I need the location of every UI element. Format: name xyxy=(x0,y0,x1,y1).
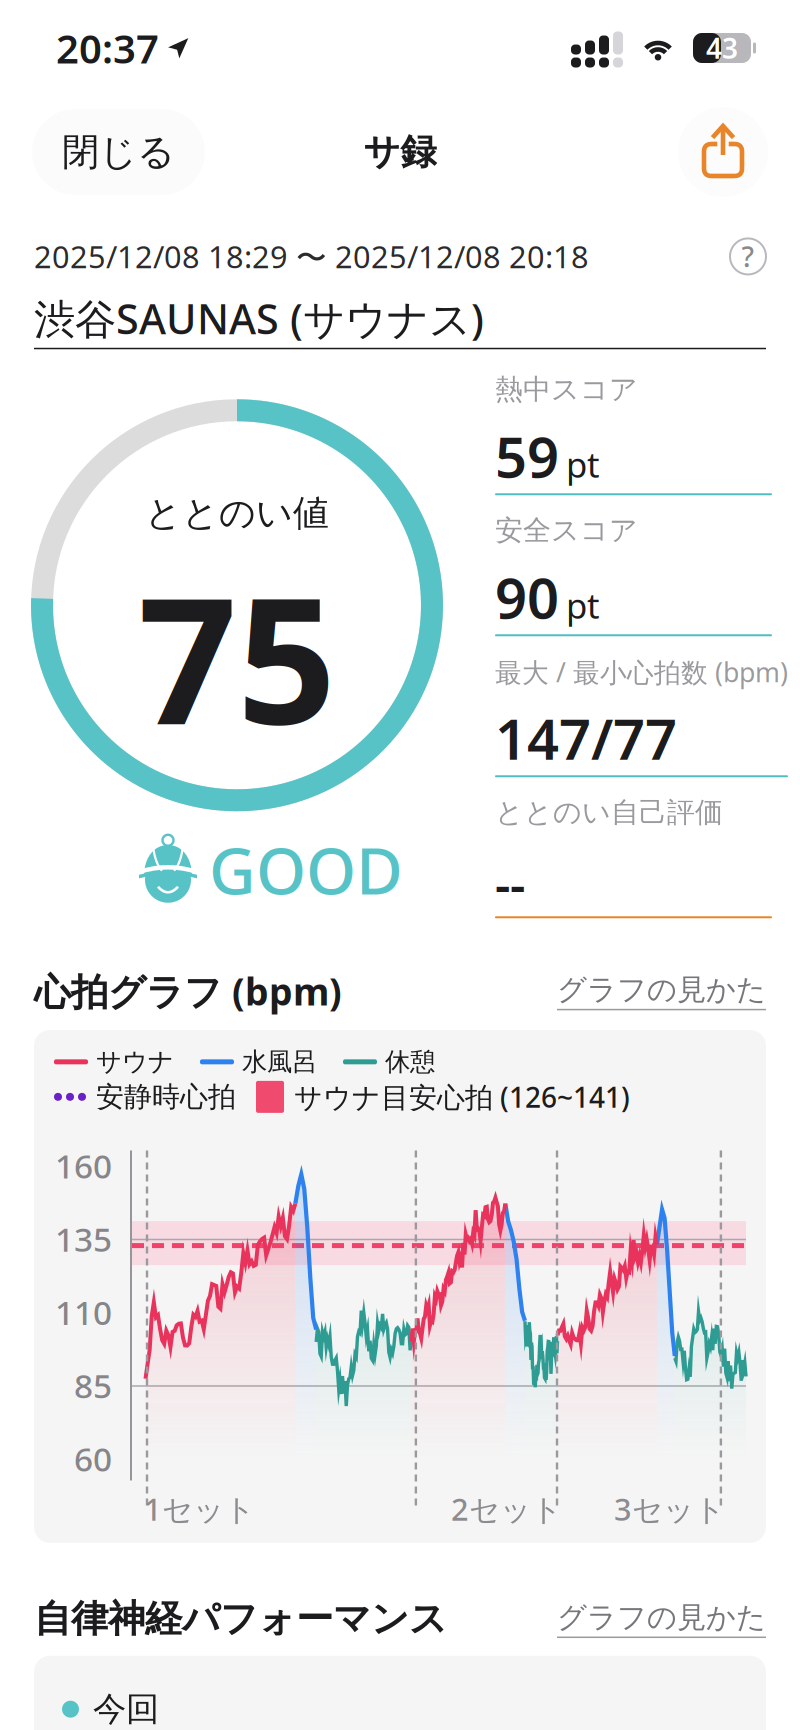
staticText: 147/77 xyxy=(495,701,677,775)
staticText: 20:37 xyxy=(56,21,159,74)
staticText: GOOD xyxy=(209,827,403,912)
staticText: グラフの見かた xyxy=(557,972,766,1008)
staticText: 安静時心拍 xyxy=(96,1080,236,1114)
staticText: 160 xyxy=(55,1143,112,1188)
staticText: 渋谷SAUNAS (サウナス) xyxy=(34,291,484,346)
staticText: 75 xyxy=(138,541,336,772)
staticText: ととのい自己評価 xyxy=(495,795,723,830)
staticText: 60 xyxy=(74,1436,112,1481)
button[interactable]: 共有 xyxy=(678,107,768,197)
staticText: 心拍グラフ (bpm) xyxy=(34,966,342,1016)
staticText: 水風呂 xyxy=(242,1046,317,1077)
staticText: サウナ xyxy=(96,1046,174,1077)
staticText: 休憩 xyxy=(385,1046,435,1077)
staticText: -- xyxy=(495,852,525,916)
staticText: 85 xyxy=(74,1363,112,1407)
staticText: 59 xyxy=(495,419,559,493)
button[interactable]: ヘルプ xyxy=(730,238,766,275)
button[interactable]: 渋谷SAUNAS (サウナス) xyxy=(34,291,766,349)
button[interactable]: グラフの見かた xyxy=(557,972,766,1010)
staticText: 2025/12/08 18:29 〜 2025/12/08 20:18 xyxy=(34,236,589,277)
staticText: 110 xyxy=(55,1290,112,1334)
staticText: pt xyxy=(566,582,600,628)
staticText: 最大 / 最小心拍数 (bpm) xyxy=(495,654,788,690)
staticText: 自律神経パフォーマンス xyxy=(34,1596,447,1642)
staticText: 3セット xyxy=(614,1488,725,1529)
staticText: 閉じる xyxy=(62,129,175,175)
button[interactable]: グラフの見かた xyxy=(557,1599,766,1638)
staticText: 43 xyxy=(706,29,738,67)
staticText: 2セット xyxy=(451,1488,562,1529)
staticText: サウナ目安心拍 (126~141) xyxy=(294,1078,630,1115)
staticText: 安全スコア xyxy=(495,513,638,548)
staticText: pt xyxy=(566,441,600,487)
staticText: 90 xyxy=(495,560,559,634)
staticText: 今回 xyxy=(93,1689,159,1730)
staticText: 1セット xyxy=(144,1488,255,1529)
staticText: グラフの見かた xyxy=(557,1599,766,1635)
staticText: ととのい値 xyxy=(145,491,329,535)
staticText: 熱中スコア xyxy=(495,372,638,407)
staticText: ? xyxy=(741,238,754,275)
button[interactable]: 閉じる xyxy=(32,109,205,195)
staticText: サ録 xyxy=(363,130,436,174)
staticText: 135 xyxy=(55,1217,112,1261)
